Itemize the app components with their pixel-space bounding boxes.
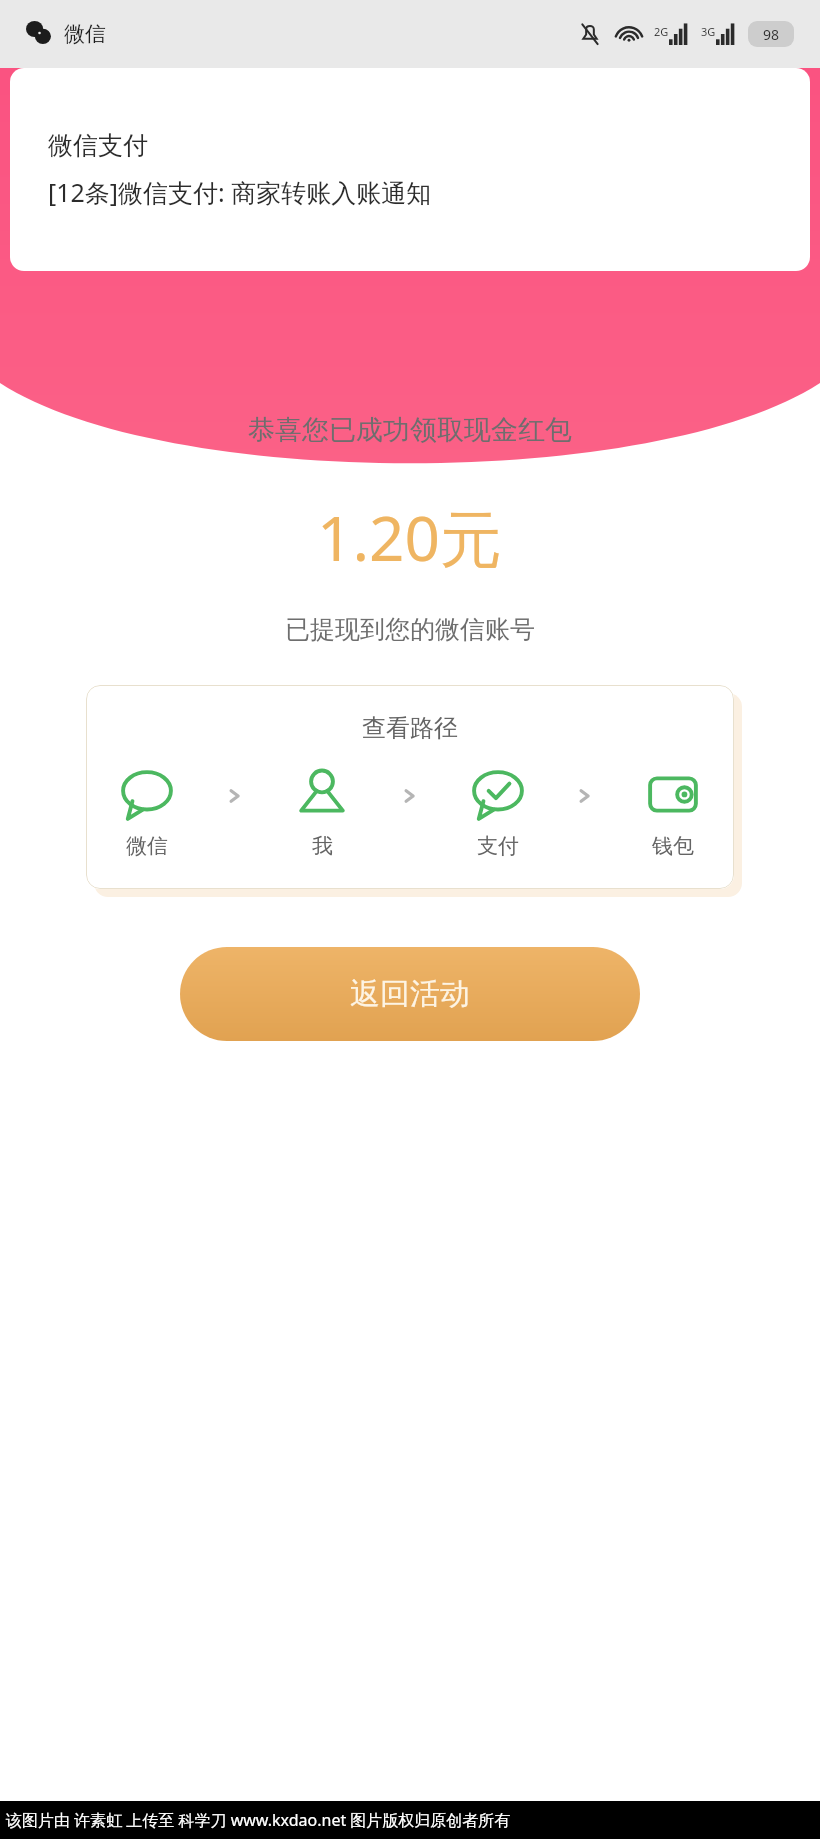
button[interactable]: 支付 bbox=[459, 769, 537, 859]
staticText: 支付 bbox=[477, 833, 519, 859]
staticText: 返回活动 bbox=[350, 975, 470, 1013]
button[interactable]: 微信 bbox=[108, 769, 186, 859]
staticText: 2G bbox=[654, 24, 669, 39]
button[interactable]: 钱包 bbox=[634, 769, 712, 859]
button[interactable]: 查看路径 bbox=[86, 685, 734, 889]
staticText: 该图片由 许素虹 上传至 科学刀 www.kxdao.net 图片版权归原创者所… bbox=[6, 1809, 511, 1831]
staticText: 微信支付 bbox=[48, 130, 148, 161]
staticText: 1.20元 bbox=[317, 495, 503, 580]
staticText: 红包已领取 bbox=[295, 166, 525, 220]
staticText: 98 bbox=[763, 25, 780, 44]
button[interactable]: 返回活动 bbox=[180, 947, 640, 1041]
staticText: 查看路径 bbox=[362, 713, 458, 743]
staticText: 微信 bbox=[64, 21, 106, 47]
button[interactable]: 微信支付 bbox=[10, 68, 810, 271]
staticText: [12条]微信支付: 商家转账入账通知 bbox=[48, 175, 432, 209]
staticText: 我 bbox=[312, 833, 333, 859]
staticText: 恭喜您已成功领取现金红包 bbox=[248, 413, 572, 447]
button[interactable]: 我 bbox=[283, 769, 361, 859]
staticText: 已提现到您的微信账号 bbox=[285, 614, 535, 645]
staticText: 微信 bbox=[126, 833, 168, 859]
staticText: 钱包 bbox=[652, 833, 694, 859]
staticText: 3G bbox=[701, 24, 716, 39]
